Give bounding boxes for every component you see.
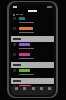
- button[interactable]: [11, 52, 54, 62]
- button[interactable]: [11, 16, 54, 26]
- button[interactable]: [11, 42, 54, 52]
- button[interactable]: [11, 26, 54, 36]
- button[interactable]: Tab 1: [21, 87, 27, 92]
- button[interactable]: Tab 0: [13, 87, 19, 92]
- button[interactable]: [11, 68, 54, 78]
- button[interactable]: Tab 4: [46, 87, 52, 92]
- button[interactable]: Tab 3: [38, 87, 44, 92]
- button[interactable]: Tab 2: [30, 87, 36, 92]
- button[interactable]: [11, 84, 54, 94]
